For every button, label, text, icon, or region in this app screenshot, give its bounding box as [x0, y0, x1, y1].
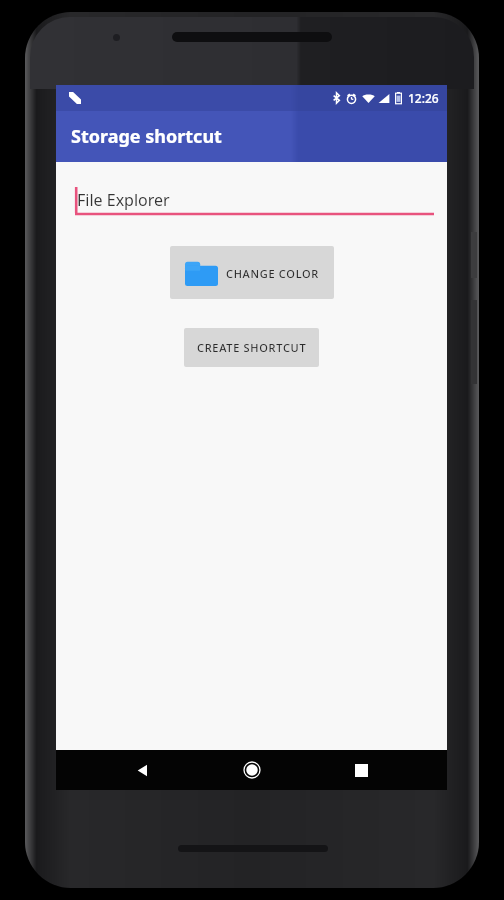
button[interactable]: Back	[118, 750, 166, 790]
button[interactable]: CHANGE COLOR	[170, 246, 334, 299]
button[interactable]: Home	[228, 750, 276, 790]
staticText: Storage shortcut	[71, 124, 222, 149]
button[interactable]: Recent apps	[337, 750, 385, 790]
button[interactable]: CREATE SHORTCUT	[184, 328, 319, 367]
button[interactable]: File Explorer	[56, 162, 447, 226]
staticText: File Explorer	[77, 189, 170, 211]
staticText: CREATE SHORTCUT	[197, 340, 307, 355]
staticText: CHANGE COLOR	[226, 266, 319, 281]
staticText: 12:26	[408, 90, 439, 106]
